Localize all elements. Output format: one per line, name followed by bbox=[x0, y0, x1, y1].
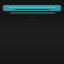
button[interactable]: Secondary action bbox=[10, 12, 55, 14]
button[interactable]: Primary action card bbox=[3, 5, 61, 11]
